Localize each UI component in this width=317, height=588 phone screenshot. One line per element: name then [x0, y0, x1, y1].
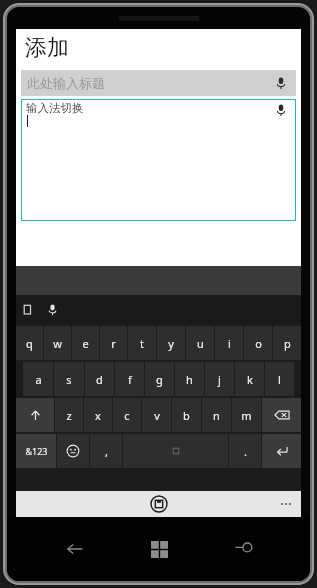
button[interactable]: 输入法切换 — [21, 99, 296, 221]
button[interactable]: Back — [57, 532, 91, 566]
staticText: z — [66, 408, 72, 423]
button[interactable]: n — [202, 398, 231, 432]
button[interactable]: k — [235, 362, 264, 396]
button[interactable]: j — [205, 362, 234, 396]
button[interactable]: 此处输入标题 — [21, 70, 296, 96]
staticText: n — [213, 408, 220, 423]
staticText: , — [105, 444, 108, 459]
button[interactable]: Start — [142, 532, 176, 566]
button[interactable]: c — [113, 398, 141, 432]
staticText: g — [156, 372, 163, 387]
button[interactable]: e — [72, 326, 99, 360]
button[interactable]: Voice typing — [45, 302, 60, 317]
button[interactable]: w — [44, 326, 71, 360]
button[interactable]: Space — [123, 434, 228, 468]
button[interactable]: Search — [226, 532, 260, 566]
staticText: . — [244, 444, 247, 459]
staticText: f — [128, 372, 132, 387]
staticText: p — [284, 336, 291, 351]
button[interactable]: Clipboard — [20, 302, 35, 317]
staticText: m — [241, 408, 252, 423]
staticText: 添加 — [25, 34, 69, 62]
button[interactable]: h — [175, 362, 204, 396]
button[interactable]: r — [100, 326, 127, 360]
staticText: d — [96, 372, 103, 387]
button[interactable]: o — [244, 326, 272, 360]
button[interactable]: Shift — [16, 398, 54, 432]
button[interactable]: x — [84, 398, 112, 432]
button[interactable]: Emoji — [57, 434, 89, 468]
button[interactable]: v — [142, 398, 171, 432]
staticText: c — [124, 408, 130, 423]
button[interactable]: &123 — [16, 434, 56, 468]
button[interactable]: More options — [277, 495, 295, 513]
staticText: o — [255, 336, 262, 351]
staticText: r — [111, 336, 116, 351]
staticText: e — [82, 336, 89, 351]
button[interactable]: f — [115, 362, 144, 396]
staticText: a — [35, 372, 42, 387]
button[interactable]: . — [229, 434, 261, 468]
staticText: u — [197, 336, 204, 351]
button[interactable]: , — [90, 434, 122, 468]
button[interactable]: y — [157, 326, 185, 360]
button[interactable]: a — [23, 362, 53, 396]
button[interactable]: z — [55, 398, 83, 432]
staticText: i — [228, 336, 231, 351]
staticText: k — [247, 372, 253, 387]
button[interactable]: s — [54, 362, 84, 396]
staticText: s — [66, 372, 72, 387]
staticText: 输入法切换 — [26, 101, 84, 115]
staticText: x — [95, 408, 101, 423]
button[interactable]: Voice input title — [273, 75, 289, 91]
button[interactable]: q — [16, 326, 43, 360]
staticText: h — [186, 372, 193, 387]
button[interactable]: Enter — [262, 434, 301, 468]
staticText: t — [140, 336, 144, 351]
staticText: l — [278, 372, 281, 387]
staticText: b — [183, 408, 190, 423]
button[interactable]: Voice input body — [273, 102, 289, 118]
button[interactable]: p — [273, 326, 301, 360]
button[interactable]: d — [85, 362, 114, 396]
staticText: y — [168, 336, 174, 351]
button[interactable]: Save — [149, 494, 169, 514]
button[interactable]: b — [172, 398, 201, 432]
button[interactable]: g — [145, 362, 174, 396]
button[interactable]: Backspace — [262, 398, 301, 432]
button[interactable]: l — [265, 362, 294, 396]
staticText: w — [53, 336, 62, 351]
button[interactable]: u — [186, 326, 214, 360]
staticText: q — [26, 336, 33, 351]
staticText: &123 — [25, 445, 48, 457]
staticText: j — [218, 372, 221, 387]
button[interactable]: m — [232, 398, 261, 432]
button[interactable]: i — [215, 326, 243, 360]
staticText: v — [154, 408, 160, 423]
staticText: 此处输入标题 — [27, 75, 105, 91]
button[interactable]: t — [128, 326, 156, 360]
